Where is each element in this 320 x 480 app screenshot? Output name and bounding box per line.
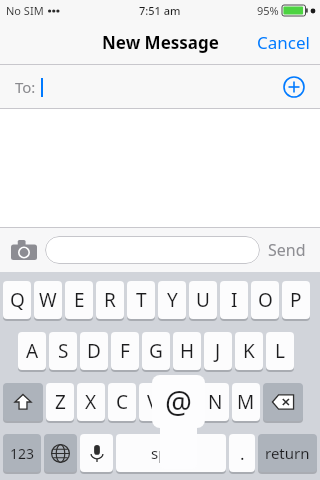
button[interactable]: R xyxy=(96,281,124,319)
staticText: K xyxy=(243,338,255,364)
staticText: S xyxy=(58,338,69,364)
staticText: L xyxy=(275,338,285,364)
staticText: C xyxy=(116,389,129,415)
staticText: X xyxy=(85,389,97,415)
button[interactable]: Q xyxy=(3,281,31,319)
staticText: return xyxy=(265,443,310,463)
staticText: P xyxy=(290,287,302,313)
button[interactable]: N xyxy=(201,383,229,421)
staticText: No SIM xyxy=(6,3,44,18)
staticText: D xyxy=(87,338,101,364)
staticText: 7:51 am xyxy=(139,3,181,18)
button[interactable]: Send xyxy=(260,233,314,267)
button[interactable]: . xyxy=(229,434,255,472)
staticText: Z xyxy=(55,389,66,415)
staticText: I xyxy=(231,287,238,313)
button[interactable]: B xyxy=(170,383,198,421)
button[interactable]: Change keyboard xyxy=(44,434,77,472)
button[interactable]: F xyxy=(111,332,139,370)
staticText: Q xyxy=(10,287,25,313)
button[interactable]: O xyxy=(251,281,279,319)
button[interactable]: A xyxy=(18,332,46,370)
button[interactable]: K xyxy=(235,332,263,370)
button[interactable]: W xyxy=(34,281,62,319)
staticText: M xyxy=(237,389,255,415)
button[interactable]: C xyxy=(108,383,136,421)
button[interactable]: L xyxy=(266,332,294,370)
button[interactable]: X xyxy=(77,383,105,421)
button[interactable]: I xyxy=(220,281,248,319)
staticText: Cancel xyxy=(257,31,310,54)
staticText: E xyxy=(74,287,85,313)
staticText: T xyxy=(136,287,147,313)
button[interactable]: Y xyxy=(158,281,186,319)
staticText: space xyxy=(151,443,192,463)
staticText: 123 xyxy=(10,444,35,463)
staticText: G xyxy=(149,338,163,364)
staticText: . xyxy=(240,442,245,465)
staticText: O xyxy=(258,287,273,313)
staticText: U xyxy=(196,287,210,313)
staticText: W xyxy=(39,287,57,313)
button[interactable]: V xyxy=(139,383,167,421)
staticText: B xyxy=(178,389,191,415)
button[interactable]: return xyxy=(258,434,317,472)
staticText: @ xyxy=(165,381,192,422)
button[interactable]: H xyxy=(173,332,201,370)
button[interactable]: 123 xyxy=(3,434,41,472)
button[interactable]: E xyxy=(65,281,93,319)
button[interactable]: D xyxy=(80,332,108,370)
button[interactable]: Camera xyxy=(7,233,41,267)
button[interactable]: M xyxy=(232,383,260,421)
button[interactable]: Add contact xyxy=(278,71,310,103)
staticText: R xyxy=(104,287,116,313)
staticText: New Message xyxy=(102,31,219,54)
staticText: V xyxy=(147,389,159,415)
staticText: Y xyxy=(167,287,178,313)
button[interactable]: G xyxy=(142,332,170,370)
staticText: 95% xyxy=(257,3,279,18)
staticText: H xyxy=(180,338,195,364)
button[interactable]: T xyxy=(127,281,155,319)
button[interactable]: Cancel xyxy=(247,23,320,62)
button[interactable]: space xyxy=(116,434,226,472)
button[interactable]: Shift xyxy=(3,383,43,421)
staticText: Send xyxy=(268,239,306,261)
button[interactable]: Backspace xyxy=(263,383,303,421)
staticText: To: xyxy=(15,77,36,97)
staticText: F xyxy=(120,338,130,364)
staticText: A xyxy=(26,338,39,364)
button[interactable]: P xyxy=(282,281,310,319)
button[interactable]: Dictate xyxy=(80,434,113,472)
button[interactable]: Z xyxy=(46,383,74,421)
button[interactable]: S xyxy=(49,332,77,370)
staticText: N xyxy=(208,389,223,415)
button[interactable] xyxy=(45,236,260,264)
button[interactable]: U xyxy=(189,281,217,319)
button[interactable]: J xyxy=(204,332,232,370)
staticText: J xyxy=(215,338,221,364)
